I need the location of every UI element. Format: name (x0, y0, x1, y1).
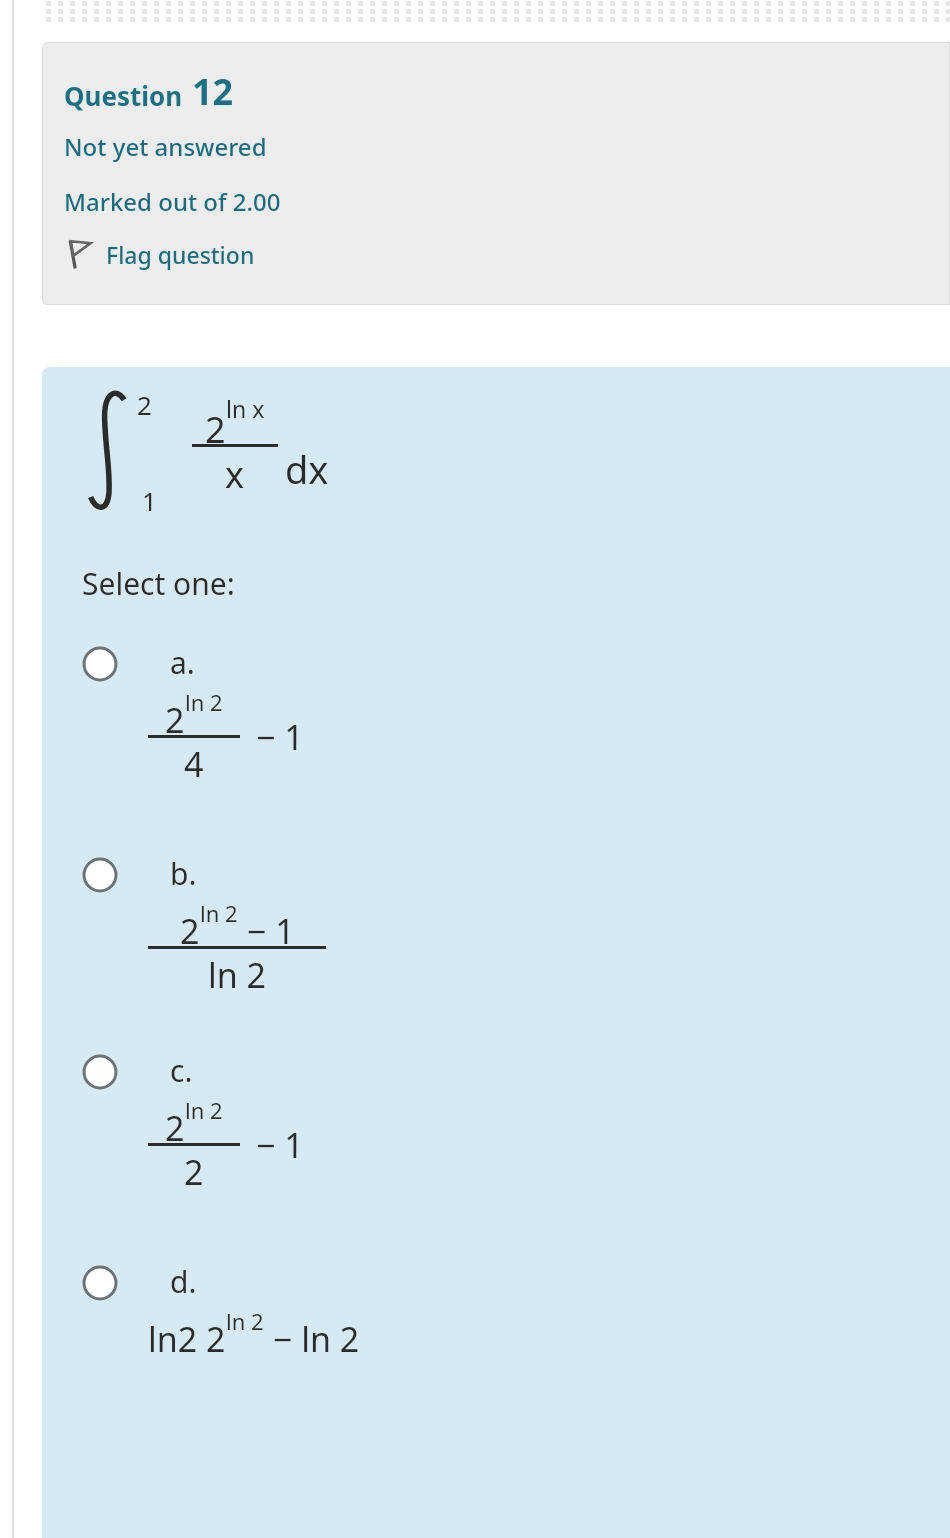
staticText: Not yet answered (64, 130, 267, 163)
other: Select option d. (82, 1265, 118, 1301)
staticText: Marked out of 2.00 (64, 185, 281, 218)
staticText: dx (285, 443, 329, 495)
staticText: ln 2 (200, 898, 238, 928)
staticText: 2 (165, 1105, 185, 1151)
staticText: 4 (184, 741, 204, 787)
button[interactable]: Select option a. (42, 638, 950, 791)
staticText: c. (170, 1050, 193, 1091)
staticText: 2 (165, 697, 185, 743)
staticText: − ln 2 (264, 1316, 360, 1362)
staticText: Question (64, 78, 183, 113)
other: Select option b. (82, 857, 118, 893)
button[interactable]: Flag question (64, 238, 255, 270)
staticText: ln 2 (208, 952, 267, 998)
staticText: ln 2 (185, 1095, 223, 1125)
staticText: 12 (192, 67, 234, 116)
button[interactable]: Select option c. (42, 1046, 950, 1199)
staticText: − 1 (256, 1122, 304, 1168)
staticText: x (225, 450, 245, 499)
staticText: ln 2 (185, 687, 223, 717)
staticText: 2 (180, 908, 200, 954)
staticText: 2 (205, 405, 226, 454)
staticText: 1 (142, 483, 157, 518)
staticText: Flag question (106, 239, 255, 270)
staticText: d. (170, 1261, 197, 1302)
staticText: 2 (137, 387, 152, 422)
staticText: Select one: (82, 563, 235, 604)
other: Select option a. (82, 646, 118, 682)
other: Select option c. (82, 1054, 118, 1090)
staticText: 2 (184, 1149, 204, 1195)
button[interactable]: Select option d. (42, 1257, 950, 1356)
staticText: − 1 (238, 908, 295, 954)
staticText: b. (170, 853, 197, 894)
staticText: ln x (226, 393, 265, 424)
staticText: − 1 (256, 714, 304, 760)
staticText: ln 2 (226, 1306, 264, 1336)
button[interactable]: Select option b. (42, 849, 950, 1002)
staticText: a. (170, 642, 195, 683)
staticText: ln2 2 (148, 1316, 226, 1362)
